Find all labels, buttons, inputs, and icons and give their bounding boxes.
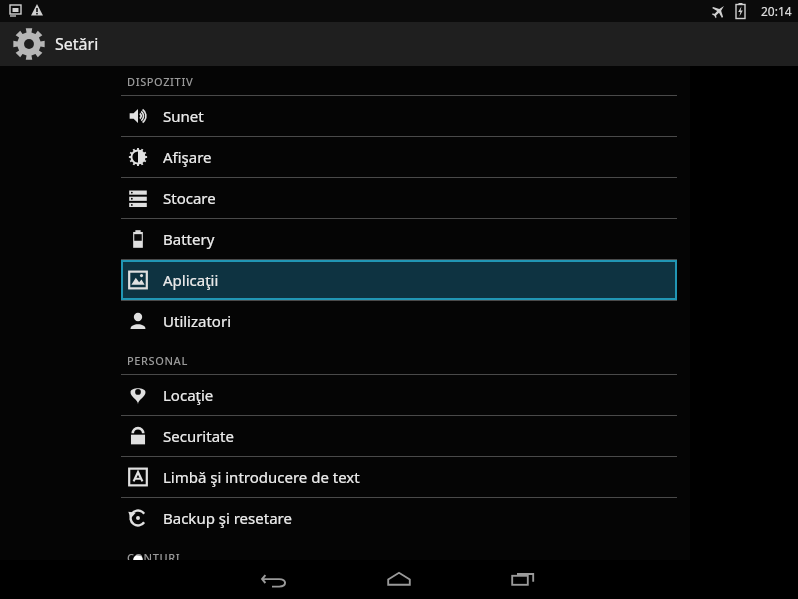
staticText: Sunet <box>163 106 204 126</box>
staticText: Utilizatori <box>163 311 232 331</box>
staticText: Aplicaţii <box>163 270 219 290</box>
button[interactable]: Afişare <box>0 137 798 177</box>
button[interactable]: Battery <box>0 219 798 259</box>
staticText: Limbă şi introducere de text <box>163 467 360 487</box>
staticText: Backup şi resetare <box>163 508 292 528</box>
button[interactable]: Limbă şi introducere de text <box>0 457 798 497</box>
staticText: Setări <box>55 33 99 55</box>
button[interactable]: Securitate <box>0 416 798 456</box>
staticText: Stocare <box>163 188 216 208</box>
staticText: Afişare <box>163 147 212 167</box>
button[interactable]: Settings <box>0 22 798 66</box>
button[interactable]: Sunet <box>0 96 798 136</box>
staticText: Securitate <box>163 426 234 446</box>
other: Settings <box>11 26 47 62</box>
button[interactable]: Aplicaţii <box>0 260 798 300</box>
button[interactable]: Home <box>371 560 427 599</box>
staticText: DISPOZITIV <box>127 74 194 89</box>
staticText: Battery <box>163 229 215 249</box>
staticText: PERSONAL <box>127 353 188 368</box>
button[interactable]: Backup şi resetare <box>0 498 798 538</box>
button[interactable]: Back <box>247 560 303 599</box>
button[interactable]: Stocare <box>0 178 798 218</box>
button[interactable]: Recent apps <box>495 560 551 599</box>
staticText: Locaţie <box>163 385 214 405</box>
staticText: CONTURI <box>127 550 181 560</box>
staticText: 20:14 <box>761 3 792 19</box>
button[interactable]: Utilizatori <box>0 301 798 341</box>
button[interactable]: Locaţie <box>0 375 798 415</box>
